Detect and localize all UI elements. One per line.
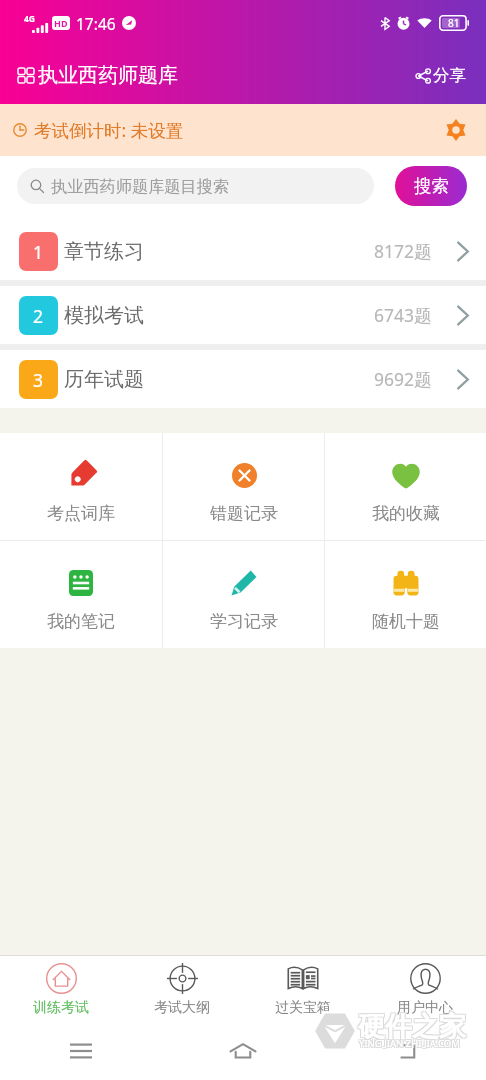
staticText: 学习记录 (210, 611, 278, 632)
staticText: 9692题 (374, 367, 432, 391)
staticText: 3 (33, 368, 44, 392)
staticText: 考试倒计时: 未设置 (34, 118, 184, 142)
staticText: 6743题 (374, 303, 432, 327)
button[interactable]: 用户中心 (364, 956, 486, 1022)
staticText: 2 (33, 304, 44, 328)
staticText: 硬件之家 (357, 1011, 465, 1045)
staticText: 我的收藏 (372, 503, 440, 524)
staticText: 历年试题 (64, 367, 144, 392)
staticText: 章节练习 (64, 239, 144, 264)
button[interactable]: 我的收藏 (325, 433, 486, 540)
staticText: 硬件之家 (358, 1010, 466, 1044)
staticText: 4G (24, 13, 36, 25)
button[interactable]: 考点词库 (0, 433, 162, 540)
button[interactable]: 随机十题 (325, 541, 486, 648)
staticText: 用户中心 (397, 999, 453, 1017)
button[interactable]: 执业西药师题库题目搜索 (17, 168, 374, 204)
staticText: 硬件之家 (357, 1009, 465, 1043)
button[interactable]: 1 (0, 222, 486, 280)
staticText: 81 (448, 16, 460, 30)
button[interactable]: 3 (0, 350, 486, 408)
staticText: 分享 (433, 65, 466, 86)
staticText: YING JIAN ZHI JIA.COM (360, 1036, 461, 1049)
button[interactable]: 分享 (412, 59, 470, 92)
button[interactable]: Back (324, 1022, 486, 1080)
staticText: 8172题 (374, 239, 432, 263)
button[interactable]: 学习记录 (163, 541, 324, 648)
staticText: YING JIAN ZHI JIA.COM (358, 1038, 459, 1051)
staticText: YING JIAN ZHI JIA.COM (360, 1038, 461, 1051)
button[interactable]: Recent apps (0, 1022, 162, 1080)
staticText: 执业西药师题库题目搜索 (51, 176, 230, 196)
button[interactable]: 2 (0, 286, 486, 344)
staticText: 随机十题 (372, 611, 440, 632)
staticText: 1 (33, 240, 44, 264)
button[interactable]: 训练考试 (0, 956, 121, 1022)
button[interactable]: 错题记录 (163, 433, 324, 540)
button[interactable]: Home (162, 1022, 324, 1080)
button[interactable]: 我的笔记 (0, 541, 162, 648)
staticText: 模拟考试 (64, 303, 144, 328)
staticText: 执业西药师题库 (38, 63, 178, 88)
staticText: YING JIAN ZHI JIA.COM (359, 1037, 460, 1050)
staticText: 硬件之家 (359, 1011, 467, 1045)
staticText: 硬件之家 (359, 1009, 467, 1043)
staticText: 错题记录 (210, 503, 278, 524)
button[interactable]: 过关宝箱 (242, 956, 364, 1022)
staticText: YING JIAN ZHI JIA.COM (358, 1036, 459, 1049)
staticText: 17:46 (76, 13, 116, 34)
staticText: 考试大纲 (154, 999, 210, 1017)
staticText: 过关宝箱 (275, 999, 331, 1017)
button[interactable]: 考试大纲 (121, 956, 242, 1022)
staticText: 考点词库 (47, 503, 115, 524)
staticText: 我的笔记 (47, 611, 115, 632)
staticText: 训练考试 (33, 999, 89, 1017)
button[interactable]: 搜索 (395, 166, 467, 206)
button[interactable]: Settings (440, 114, 472, 146)
staticText: 搜索 (414, 175, 449, 197)
staticText: HD (54, 17, 68, 29)
